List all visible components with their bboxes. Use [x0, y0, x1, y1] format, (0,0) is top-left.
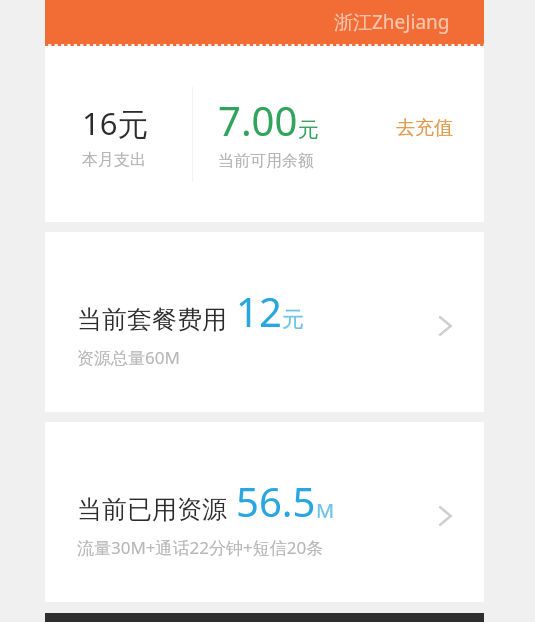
staticText: 7.00 [218, 93, 298, 147]
staticText: 当前套餐费用 [77, 304, 227, 335]
staticText: 资源总量60M [77, 346, 180, 369]
button[interactable]: 16元 [82, 102, 149, 170]
staticText: 元 [298, 117, 319, 143]
staticText: 16元 [82, 102, 149, 144]
staticText: 元 [282, 306, 304, 334]
staticText: M [316, 497, 335, 524]
button[interactable]: 当前已用资源 56.5M [45, 422, 484, 602]
button[interactable]: 去充值 [390, 112, 459, 144]
button[interactable]: 7.00 [218, 93, 319, 171]
staticText: 当前已用资源 [77, 494, 227, 525]
staticText: 当前可用余额 [218, 151, 314, 171]
staticText: 浙江ZheJiang [334, 9, 450, 35]
button[interactable]: 当前套餐费用 12元 [45, 232, 484, 412]
staticText: 去充值 [396, 116, 453, 140]
staticText: 流量30M+通话22分钟+短信20条 [77, 536, 324, 559]
staticText: 本月支出 [82, 150, 146, 170]
staticText: 12 [236, 284, 282, 338]
staticText: 56.5 [236, 474, 316, 528]
